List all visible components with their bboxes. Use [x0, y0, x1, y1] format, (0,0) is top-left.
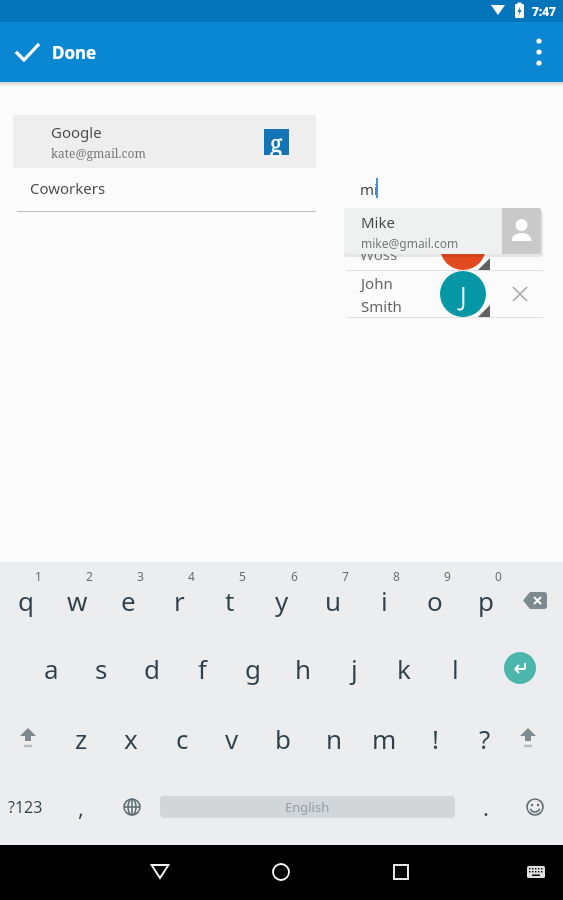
button[interactable]: e	[103, 570, 153, 630]
button[interactable]: k	[379, 638, 429, 698]
button[interactable]: j	[329, 638, 379, 698]
button[interactable]: z	[56, 708, 106, 768]
button[interactable]: x	[106, 708, 156, 768]
button[interactable]	[512, 848, 560, 896]
staticText: Google	[51, 122, 102, 142]
button[interactable]: John	[345, 271, 543, 317]
staticText: ?	[479, 721, 491, 756]
staticText: o	[427, 583, 443, 618]
staticText: English	[285, 798, 330, 816]
staticText: !	[432, 721, 439, 756]
staticText: Smith	[361, 296, 402, 316]
staticText: mi	[360, 179, 378, 199]
button[interactable]: English	[160, 796, 455, 818]
button[interactable]: s	[76, 638, 126, 698]
button[interactable]: w	[52, 570, 102, 630]
staticText: 7:47	[532, 3, 556, 19]
staticText: d	[144, 651, 160, 686]
staticText: n	[326, 721, 343, 756]
staticText: l	[452, 651, 459, 686]
staticText: 6	[291, 568, 298, 584]
button[interactable]: c	[157, 708, 207, 768]
staticText: h	[295, 651, 312, 686]
button[interactable]: r	[154, 570, 204, 630]
button[interactable]: Done	[0, 22, 97, 82]
staticText: k	[397, 651, 411, 686]
staticText: p	[478, 583, 494, 618]
button[interactable]: y	[257, 570, 307, 630]
staticText: s	[95, 651, 108, 686]
button[interactable]: q	[1, 570, 51, 630]
staticText: m	[372, 721, 397, 756]
button[interactable]: v	[207, 708, 257, 768]
button[interactable]: Mike	[344, 208, 541, 254]
staticText: ,	[78, 792, 84, 822]
staticText: x	[124, 721, 138, 756]
staticText: w	[67, 583, 88, 618]
button[interactable]	[3, 713, 53, 763]
staticText: q	[18, 583, 34, 618]
staticText: Coworkers	[30, 178, 106, 198]
button[interactable]	[377, 848, 425, 896]
staticText: John	[361, 273, 393, 293]
staticText: g	[245, 651, 261, 686]
button[interactable]: d	[127, 638, 177, 698]
button[interactable]: u	[308, 570, 358, 630]
button[interactable]	[510, 787, 560, 827]
button[interactable]: !	[410, 708, 460, 768]
staticText: 7	[342, 568, 349, 584]
staticText: ?123	[8, 796, 43, 818]
staticText: mike@gmail.com	[361, 235, 459, 251]
staticText: kate@gmail.com	[51, 145, 146, 161]
staticText: c	[176, 721, 189, 756]
staticText: 3	[137, 568, 144, 584]
staticText: b	[275, 721, 291, 756]
button[interactable]: h	[278, 638, 328, 698]
staticText: Woss	[360, 244, 398, 264]
button[interactable]	[257, 848, 305, 896]
staticText: 9	[444, 568, 451, 584]
button[interactable]: ,	[56, 777, 106, 837]
staticText: 0	[495, 568, 502, 584]
button[interactable]: Coworkers	[17, 170, 317, 212]
button[interactable]: f	[177, 638, 227, 698]
staticText: J	[460, 277, 467, 312]
button[interactable]: t	[205, 570, 255, 630]
button[interactable]: .	[461, 777, 511, 837]
staticText: 4	[188, 568, 195, 584]
staticText: 1	[35, 568, 42, 584]
button[interactable]: a	[26, 638, 76, 698]
button[interactable]: ?	[460, 708, 510, 768]
button[interactable]: b	[258, 708, 308, 768]
staticText: a	[44, 651, 59, 686]
staticText: y	[275, 583, 289, 618]
button[interactable]: i	[359, 570, 409, 630]
staticText: z	[75, 721, 88, 756]
staticText: g	[270, 127, 283, 158]
staticText: Mike	[361, 212, 395, 232]
staticText: v	[225, 721, 239, 756]
button[interactable]	[515, 22, 563, 82]
button[interactable]	[510, 580, 560, 620]
button[interactable]: p	[461, 570, 511, 630]
button[interactable]: m	[359, 708, 409, 768]
button[interactable]	[136, 848, 184, 896]
staticText: i	[381, 583, 388, 618]
button[interactable]: o	[410, 570, 460, 630]
button[interactable]	[107, 787, 157, 827]
button[interactable]	[503, 713, 553, 763]
button[interactable]: g	[228, 638, 278, 698]
button[interactable]	[504, 652, 536, 684]
staticText: e	[121, 583, 136, 618]
button[interactable]: l	[430, 638, 480, 698]
button[interactable]: n	[309, 708, 359, 768]
staticText: 5	[239, 568, 246, 584]
staticText: t	[225, 583, 235, 618]
staticText: 2	[86, 568, 93, 584]
button[interactable]: Google	[13, 115, 316, 168]
staticText: .	[483, 792, 489, 822]
staticText: 8	[393, 568, 400, 584]
staticText: r	[174, 583, 185, 618]
staticText: Done	[52, 41, 97, 64]
staticText: f	[198, 651, 207, 686]
